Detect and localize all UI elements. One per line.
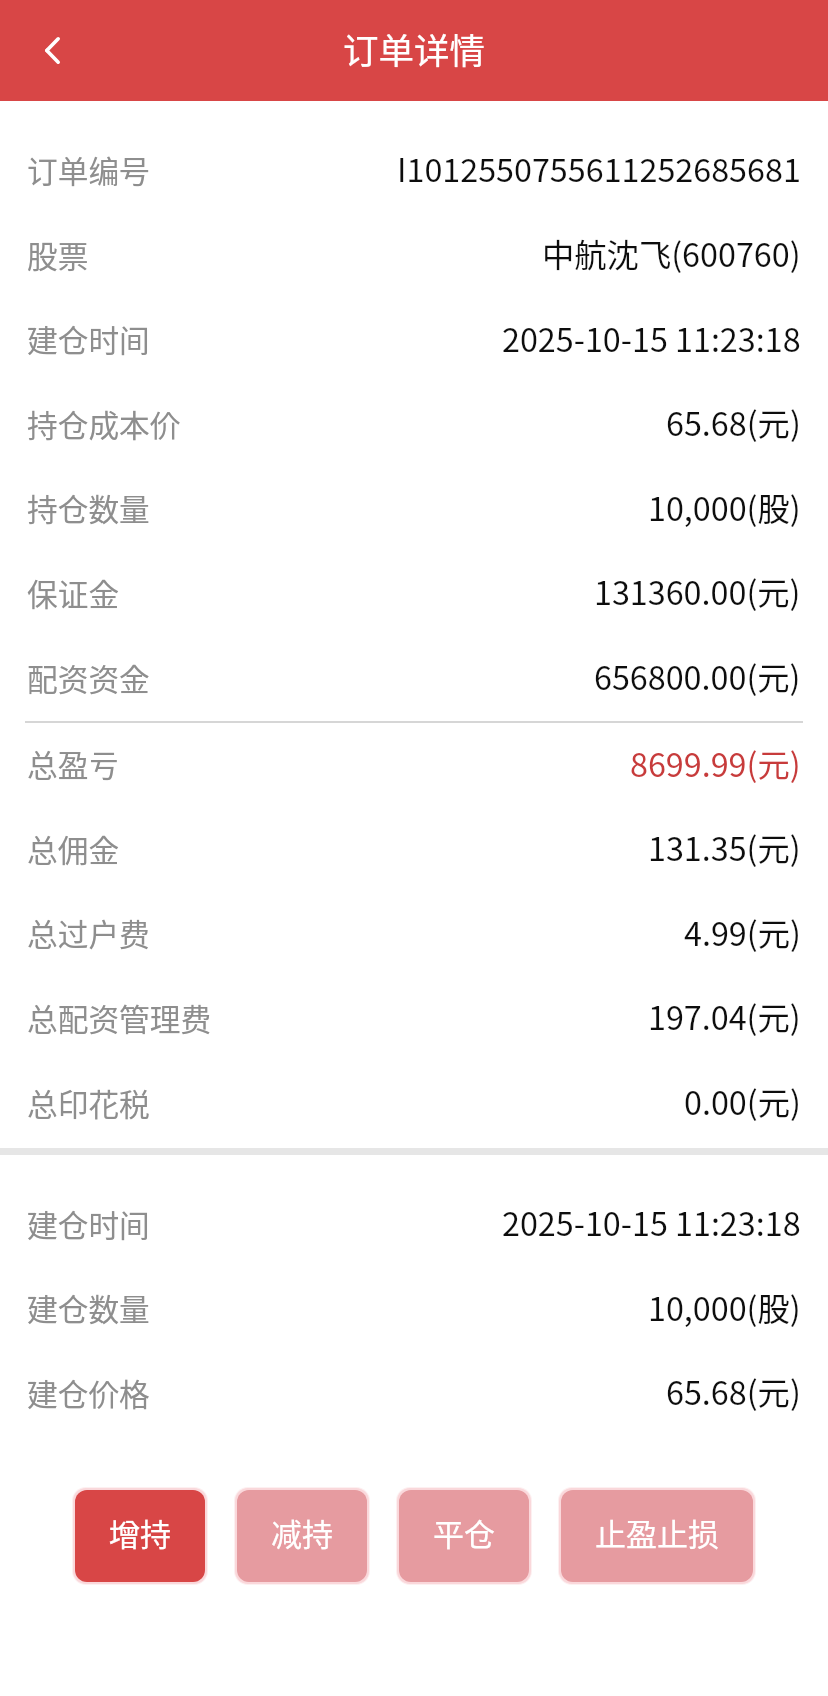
button[interactable]: 建仓数量 (0, 1267, 828, 1351)
button[interactable]: 建仓价格 (0, 1351, 828, 1436)
staticText: 131360.00(元) (594, 568, 801, 615)
button[interactable]: 总盈亏 (0, 723, 828, 807)
staticText: 总盈亏 (27, 741, 120, 785)
button[interactable]: 总印花税 (0, 1061, 828, 1146)
button[interactable]: 总配资管理费 (0, 976, 828, 1061)
staticText: 保证金 (27, 570, 120, 614)
staticText: 减持 (271, 1510, 333, 1555)
button[interactable]: 持仓数量 (0, 467, 828, 551)
button[interactable]: 股票 (0, 213, 828, 298)
button[interactable]: 配资资金 (0, 636, 828, 721)
staticText: 建仓时间 (27, 1201, 150, 1245)
staticText: 建仓时间 (27, 316, 150, 360)
staticText: 总印花税 (27, 1080, 150, 1124)
staticText: 656800.00(元) (594, 653, 801, 700)
staticText: 总配资管理费 (27, 995, 212, 1039)
staticText: 止盈止损 (595, 1510, 719, 1555)
staticText: 增持 (109, 1510, 171, 1555)
staticText: 4.99(元) (684, 909, 801, 956)
button[interactable]: 建仓时间 (0, 1182, 828, 1267)
button[interactable]: 增持 (75, 1490, 205, 1582)
staticText: 131.35(元) (648, 824, 801, 871)
staticText: 持仓成本价 (27, 401, 181, 445)
staticText: 65.68(元) (666, 399, 801, 446)
staticText: 建仓数量 (27, 1285, 150, 1329)
button[interactable]: 总过户费 (0, 892, 828, 976)
staticText: 10,000(股) (648, 484, 801, 531)
staticText: 订单详情 (343, 23, 486, 74)
staticText: I1012550755611252685681 (397, 145, 801, 192)
staticText: 65.68(元) (666, 1368, 801, 1415)
button[interactable]: 持仓成本价 (0, 382, 828, 467)
button[interactable]: 总佣金 (0, 807, 828, 892)
staticText: 2025-10-15 11:23:18 (502, 1199, 801, 1246)
staticText: 2025-10-15 11:23:18 (502, 315, 801, 362)
button[interactable]: 建仓时间 (0, 298, 828, 382)
staticText: 总过户费 (27, 910, 150, 954)
button[interactable]: Back (0, 0, 101, 101)
staticText: 197.04(元) (648, 993, 801, 1040)
staticText: 持仓数量 (27, 485, 150, 529)
staticText: 总佣金 (27, 826, 120, 870)
button[interactable]: 保证金 (0, 551, 828, 636)
button[interactable]: 止盈止损 (561, 1490, 753, 1582)
button[interactable]: 订单编号 (0, 128, 828, 213)
staticText: 股票 (27, 232, 89, 276)
staticText: 0.00(元) (684, 1078, 801, 1125)
staticText: 10,000(股) (648, 1284, 801, 1331)
staticText: 订单编号 (27, 147, 150, 191)
staticText: 平仓 (433, 1510, 495, 1555)
staticText: 中航沈飞(600760) (542, 230, 801, 277)
staticText: 配资资金 (27, 655, 150, 699)
button[interactable]: 减持 (237, 1490, 367, 1582)
button[interactable]: 平仓 (399, 1490, 529, 1582)
staticText: 建仓价格 (27, 1370, 150, 1414)
staticText: 8699.99(元) (630, 740, 801, 787)
